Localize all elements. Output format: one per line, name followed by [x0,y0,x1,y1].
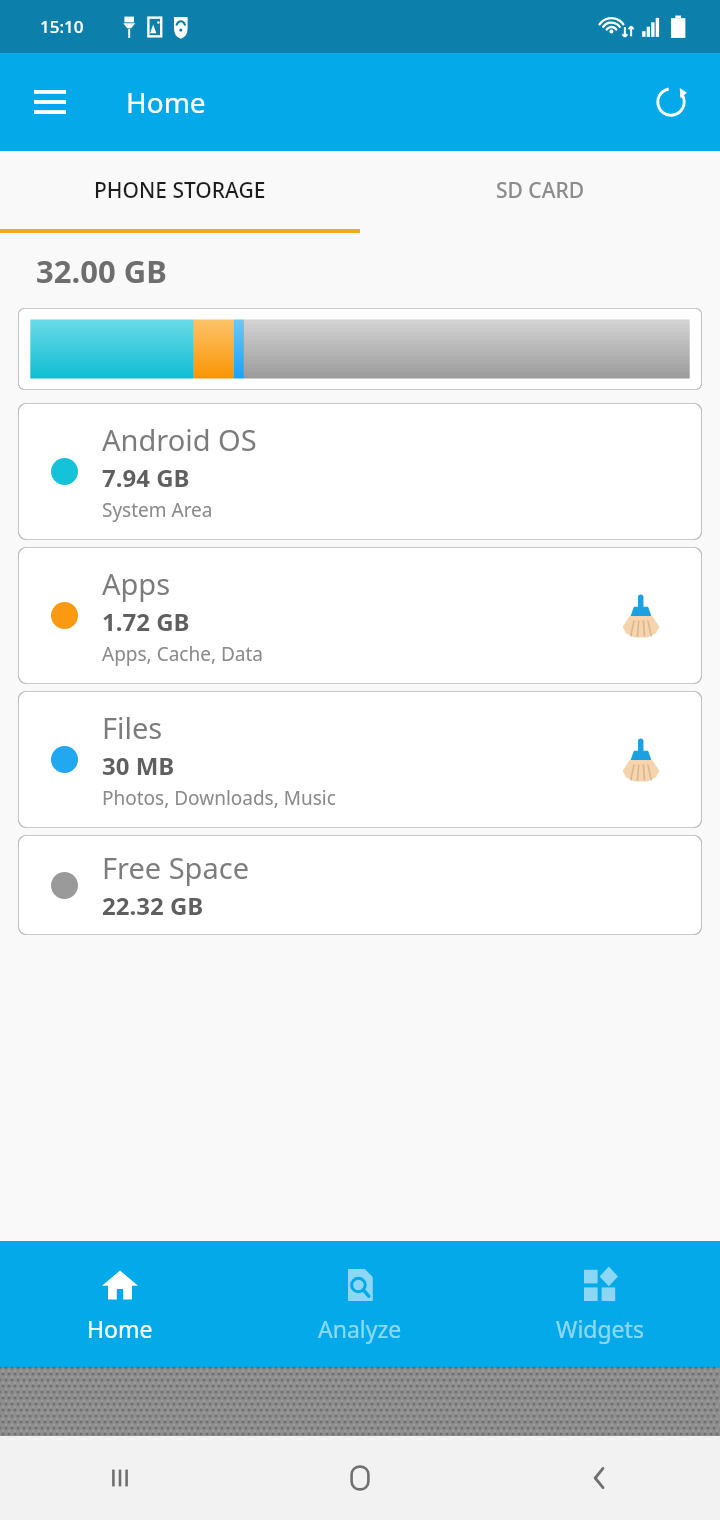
staticText: Widgets [556,1313,644,1344]
button[interactable]: Widgets [480,1241,720,1368]
staticText: 1.72 GB [102,605,190,638]
staticText: 15:10 [40,15,84,38]
staticText: Photos, Downloads, Music [102,785,336,811]
button[interactable]: Android OS [18,403,702,540]
staticText: Analyze [318,1313,402,1344]
staticText: Apps, Cache, Data [102,641,263,667]
button[interactable]: SD CARD [360,151,720,229]
button[interactable]: Analyze [240,1241,480,1368]
staticText: SD CARD [496,176,585,205]
staticText: Home [87,1313,153,1344]
staticText: 32.00 GB [36,250,167,292]
staticText: Files [102,708,163,747]
button[interactable]: Clean Apps [606,581,676,651]
button[interactable]: Apps [18,547,702,684]
button[interactable]: Free Space [18,835,702,935]
button[interactable]: Home [0,1241,240,1368]
staticText: System Area [102,497,213,523]
staticText: 22.32 GB [102,889,204,922]
staticText: Home [126,83,206,121]
button[interactable] [18,308,702,390]
staticText: 30 MB [102,749,175,782]
button[interactable]: Files [18,691,702,828]
button[interactable]: Open navigation menu [18,70,82,134]
button[interactable]: PHONE STORAGE [0,151,360,229]
staticText: PHONE STORAGE [94,176,266,205]
staticText: 7.94 GB [102,461,190,494]
staticText: Android OS [102,420,257,459]
button[interactable]: Clean Files [606,725,676,795]
staticText: Free Space [102,848,250,887]
staticText: Apps [102,564,171,603]
button[interactable]: Refresh [640,71,702,133]
